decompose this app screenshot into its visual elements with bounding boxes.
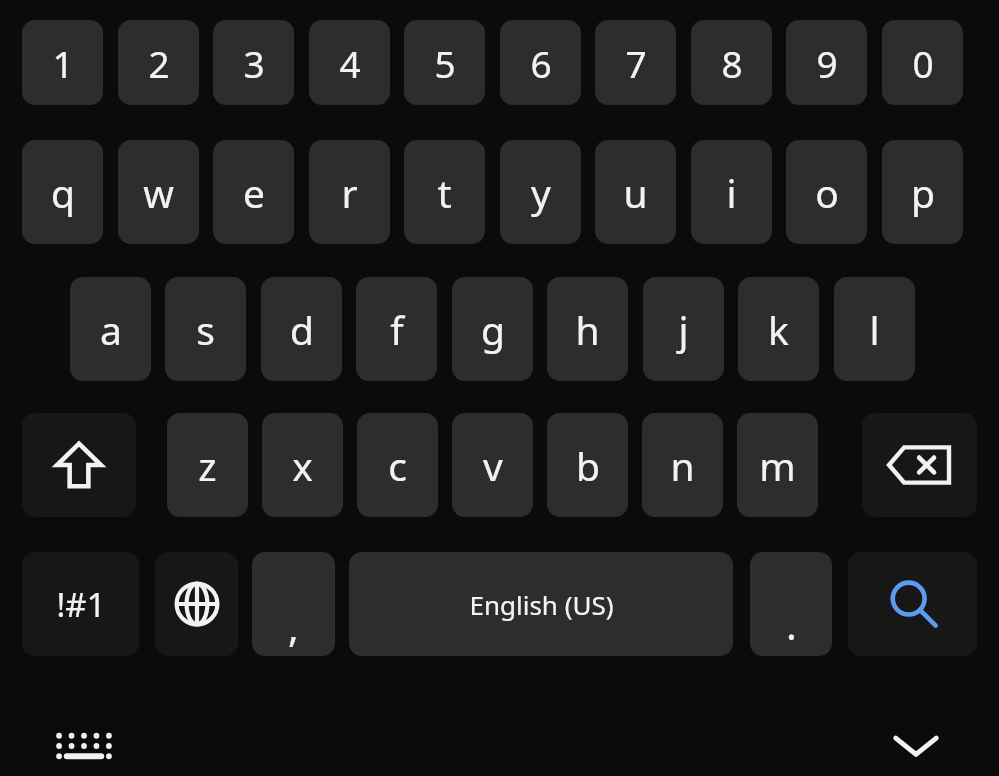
- staticText: 1: [52, 38, 74, 88]
- button[interactable]: Backspace: [862, 413, 977, 517]
- staticText: English (US): [469, 587, 614, 622]
- staticText: i: [726, 166, 737, 219]
- staticText: ,: [288, 599, 299, 653]
- button[interactable]: u: [595, 140, 676, 244]
- button[interactable]: 3: [213, 20, 294, 105]
- button[interactable]: t: [404, 140, 485, 244]
- staticText: q: [51, 166, 75, 219]
- staticText: 6: [530, 38, 552, 88]
- button[interactable]: y: [500, 140, 581, 244]
- button[interactable]: i: [691, 140, 772, 244]
- button[interactable]: Shift: [22, 413, 136, 517]
- button[interactable]: z: [167, 413, 248, 517]
- button[interactable]: 6: [500, 20, 581, 105]
- button[interactable]: p: [882, 140, 963, 244]
- staticText: 9: [816, 38, 838, 88]
- staticText: 5: [434, 38, 456, 88]
- button[interactable]: b: [547, 413, 628, 517]
- button[interactable]: j: [643, 277, 724, 381]
- staticText: 7: [625, 38, 647, 88]
- staticText: p: [911, 166, 935, 219]
- staticText: 4: [339, 38, 361, 88]
- staticText: f: [390, 303, 404, 356]
- button[interactable]: Change input method: [44, 716, 124, 776]
- staticText: h: [575, 303, 600, 356]
- staticText: l: [869, 303, 880, 356]
- button[interactable]: s: [165, 277, 246, 381]
- staticText: v: [483, 439, 503, 492]
- staticText: 0: [912, 38, 934, 88]
- button[interactable]: x: [262, 413, 343, 517]
- staticText: u: [623, 166, 648, 219]
- button[interactable]: 8: [691, 20, 772, 105]
- button[interactable]: w: [118, 140, 199, 244]
- staticText: !#1: [56, 582, 106, 627]
- staticText: .: [786, 597, 797, 651]
- button[interactable]: q: [22, 140, 103, 244]
- button[interactable]: o: [786, 140, 867, 244]
- button[interactable]: 7: [595, 20, 676, 105]
- staticText: e: [243, 166, 265, 219]
- staticText: y: [531, 166, 551, 219]
- button[interactable]: h: [547, 277, 628, 381]
- button[interactable]: .: [750, 552, 832, 656]
- button[interactable]: a: [70, 277, 151, 381]
- button[interactable]: English (US): [349, 552, 733, 656]
- button[interactable]: g: [452, 277, 533, 381]
- button[interactable]: e: [213, 140, 294, 244]
- button[interactable]: ,: [252, 552, 335, 656]
- staticText: z: [198, 439, 217, 492]
- staticText: 8: [721, 38, 743, 88]
- staticText: b: [576, 439, 600, 492]
- button[interactable]: c: [357, 413, 438, 517]
- staticText: w: [143, 166, 174, 219]
- button[interactable]: v: [452, 413, 533, 517]
- staticText: 3: [243, 38, 265, 88]
- staticText: g: [481, 303, 505, 356]
- button[interactable]: Change language: [155, 552, 238, 656]
- button[interactable]: 2: [118, 20, 199, 105]
- staticText: n: [670, 439, 695, 492]
- button[interactable]: m: [737, 413, 818, 517]
- button[interactable]: 0: [882, 20, 963, 105]
- staticText: j: [678, 303, 689, 356]
- button[interactable]: Search: [848, 552, 977, 656]
- button[interactable]: d: [261, 277, 342, 381]
- staticText: 2: [148, 38, 170, 88]
- staticText: c: [388, 439, 407, 492]
- staticText: t: [437, 166, 452, 219]
- staticText: k: [768, 303, 789, 356]
- staticText: a: [100, 303, 122, 356]
- staticText: r: [341, 166, 358, 219]
- button[interactable]: !#1: [22, 552, 139, 656]
- staticText: o: [815, 166, 839, 219]
- staticText: x: [292, 439, 313, 492]
- staticText: m: [759, 439, 796, 492]
- staticText: s: [196, 303, 215, 356]
- button[interactable]: r: [309, 140, 390, 244]
- button[interactable]: Hide keyboard: [876, 716, 956, 776]
- button[interactable]: 9: [786, 20, 867, 105]
- button[interactable]: f: [356, 277, 437, 381]
- button[interactable]: k: [738, 277, 819, 381]
- button[interactable]: 1: [22, 20, 103, 105]
- button[interactable]: 4: [309, 20, 390, 105]
- button[interactable]: n: [642, 413, 723, 517]
- button[interactable]: 5: [404, 20, 485, 105]
- button[interactable]: l: [834, 277, 915, 381]
- staticText: d: [290, 303, 314, 356]
